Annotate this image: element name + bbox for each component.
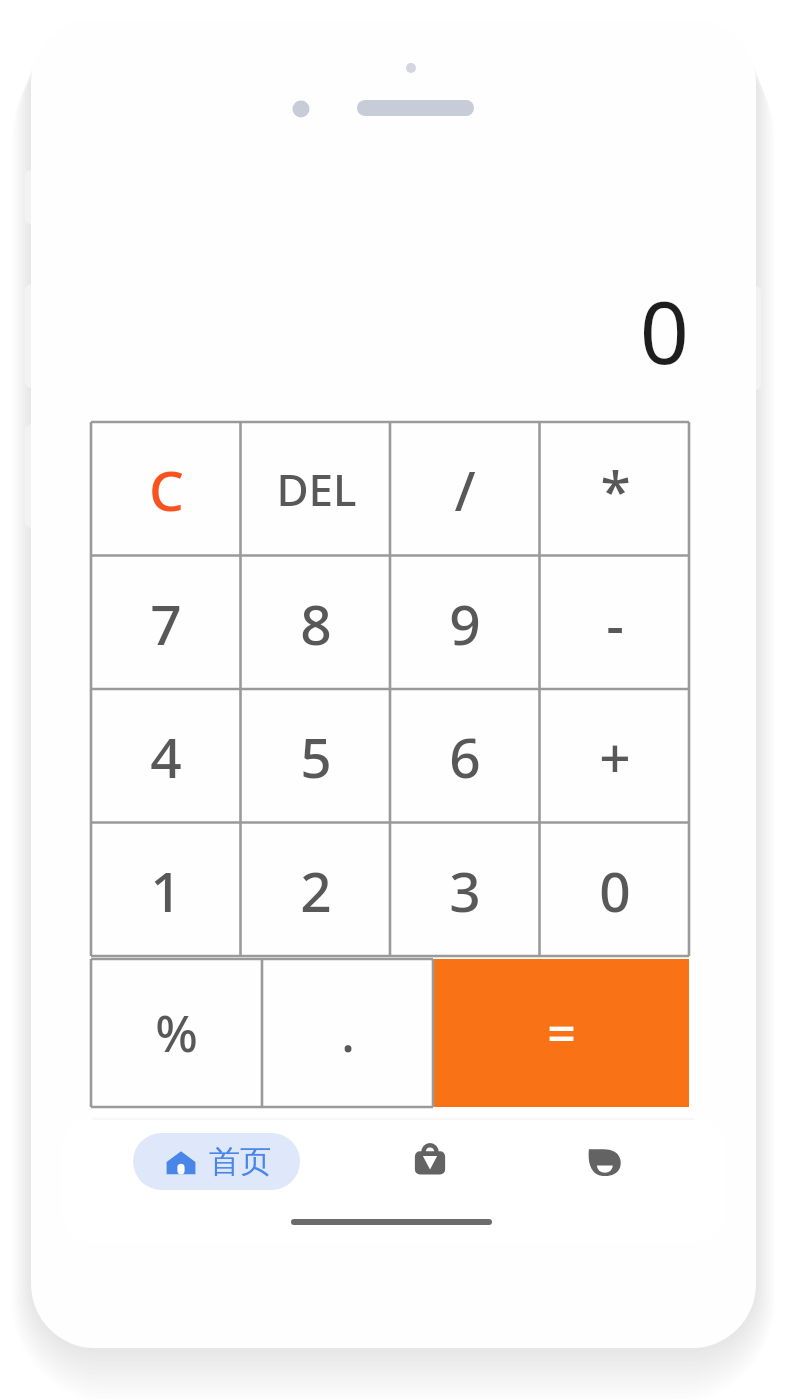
staticText: - [606,586,624,661]
staticText: 1 [150,853,182,928]
button[interactable]: / [390,422,540,556]
staticText: 0 [639,272,689,376]
button[interactable]: 5 [241,689,391,823]
staticText: 0 [599,853,631,928]
staticText: C [149,452,184,527]
staticText: 9 [449,586,481,661]
button[interactable]: C [91,422,241,556]
staticText: 7 [150,586,182,661]
button[interactable]: 工具 [386,1132,474,1190]
staticText: 4 [150,719,182,794]
staticText: 3 [449,853,481,928]
staticText: * [600,452,631,527]
button[interactable]: 7 [91,556,241,690]
button[interactable]: 0 [540,823,690,957]
staticText: 2 [300,853,332,928]
button[interactable]: * [540,422,690,556]
button[interactable]: 3 [390,823,540,957]
button[interactable]: 8 [241,556,391,690]
staticText: 6 [449,719,481,794]
staticText: 5 [300,719,332,794]
button[interactable]: = [433,959,689,1107]
staticText: DEL [276,459,357,519]
staticText: . [341,999,355,1067]
button[interactable]: 9 [390,556,540,690]
staticText: = [547,999,576,1067]
button[interactable]: 2 [241,823,391,957]
button[interactable]: 我的 [560,1132,648,1190]
staticText: 8 [300,586,332,661]
staticText: / [454,452,476,527]
button[interactable]: 6 [390,689,540,823]
staticText: % [155,999,198,1067]
button[interactable]: 4 [91,689,241,823]
button[interactable]: . [262,959,433,1107]
button[interactable]: 首页 [133,1133,300,1190]
button[interactable]: + [540,689,690,823]
staticText: 首页 [209,1142,271,1181]
button[interactable]: 1 [91,823,241,957]
button[interactable]: % [91,959,262,1107]
button[interactable]: - [540,556,690,690]
staticText: + [599,719,631,794]
button[interactable]: DEL [241,422,391,556]
